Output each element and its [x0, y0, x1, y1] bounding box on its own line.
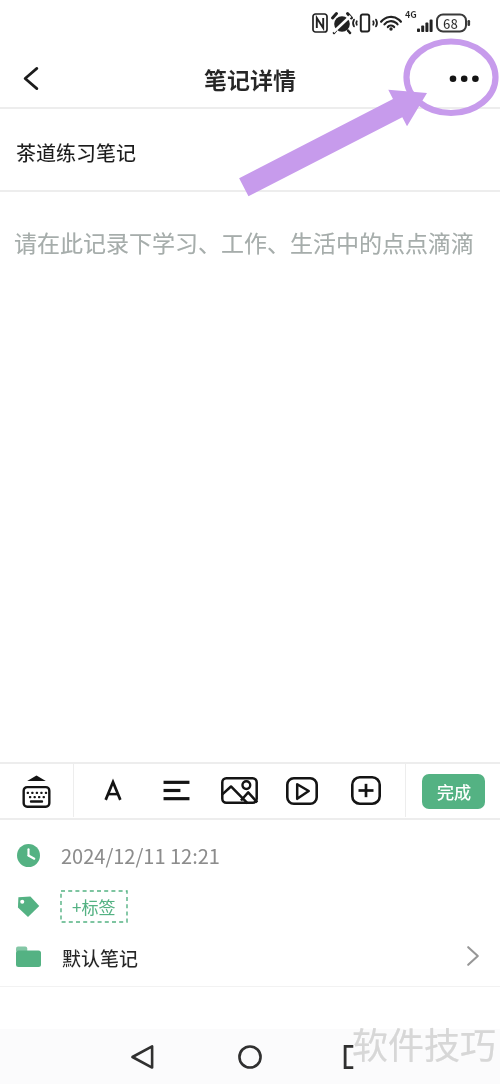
button[interactable]: Text format [89, 764, 137, 817]
staticText: 请在此记录下学习、工作、生活中的点点滴滴 [14, 225, 474, 258]
staticText: 4G [405, 8, 417, 21]
staticText: +标签 [72, 894, 116, 919]
button[interactable]: Back [113, 1029, 173, 1084]
button[interactable]: Back [0, 40, 62, 108]
button[interactable]: Alignment [152, 764, 200, 817]
staticText: 2024/12/11 12:21 [61, 841, 220, 870]
staticText: 软件技巧 [352, 1017, 497, 1069]
button[interactable]: 完成 [422, 774, 485, 809]
button[interactable]: Home [220, 1029, 280, 1084]
button[interactable]: +标签 [61, 891, 127, 922]
button[interactable]: 2024/12/11 12:21 [0, 830, 500, 880]
staticText: 茶道练习笔记 [16, 138, 136, 167]
button[interactable]: 默认笔记 [0, 931, 500, 981]
staticText: 笔记详情 [204, 62, 296, 95]
button[interactable]: Add more [342, 764, 390, 817]
button[interactable]: Insert video [278, 764, 326, 817]
button[interactable]: Recent apps [318, 1029, 378, 1084]
button[interactable]: More options [429, 40, 499, 108]
staticText: 默认笔记 [62, 944, 139, 972]
button[interactable]: Hide keyboard [0, 764, 73, 817]
button[interactable]: Insert image [215, 764, 263, 817]
staticText: 68 [443, 14, 458, 33]
staticText: 完成 [437, 779, 471, 804]
